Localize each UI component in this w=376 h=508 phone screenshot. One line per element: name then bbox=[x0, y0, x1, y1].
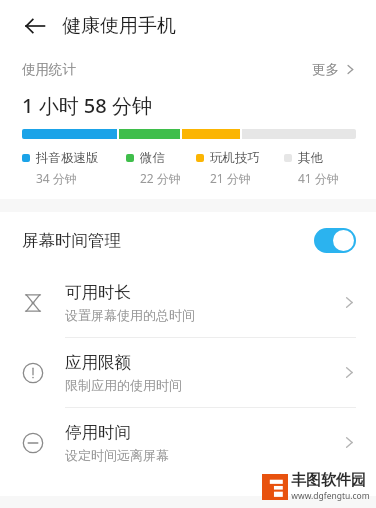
staticText: 21 分钟 bbox=[210, 170, 251, 186]
button[interactable]: 停用时间 bbox=[0, 408, 376, 477]
staticText: 丰图软件园 bbox=[291, 471, 366, 490]
button[interactable]: 应用限额 bbox=[0, 338, 376, 408]
button[interactable]: 屏幕时间管理开关 bbox=[314, 228, 356, 253]
staticText: 限制应用的使用时间 bbox=[65, 377, 182, 393]
staticText: 设置屏幕使用的总时间 bbox=[65, 307, 195, 323]
staticText: 22 分钟 bbox=[140, 170, 181, 186]
staticText: 41 分钟 bbox=[298, 170, 339, 186]
button[interactable]: 屏幕时间管理 bbox=[0, 212, 376, 268]
staticText: 停用时间 bbox=[65, 422, 131, 443]
staticText: 34 分钟 bbox=[36, 170, 77, 186]
staticText: 微信 bbox=[140, 150, 165, 166]
button[interactable]: 可用时长 bbox=[0, 268, 376, 338]
staticText: 设定时间远离屏幕 bbox=[65, 447, 169, 463]
staticText: 可用时长 bbox=[65, 282, 131, 303]
staticText: 其他 bbox=[298, 150, 323, 166]
button[interactable]: 更多 bbox=[310, 57, 358, 82]
staticText: 屏幕时间管理 bbox=[22, 230, 121, 251]
staticText: 应用限额 bbox=[65, 352, 131, 373]
staticText: 抖音极速版 bbox=[36, 150, 99, 166]
staticText: 使用统计 bbox=[22, 61, 76, 78]
staticText: 1 小时 58 分钟 bbox=[22, 92, 152, 119]
staticText: 健康使用手机 bbox=[62, 14, 176, 38]
staticText: www.dgfengtu.com bbox=[291, 490, 370, 502]
button[interactable]: Back bbox=[20, 11, 50, 41]
staticText: 更多 bbox=[312, 61, 339, 78]
staticText: 玩机技巧 bbox=[210, 150, 260, 166]
